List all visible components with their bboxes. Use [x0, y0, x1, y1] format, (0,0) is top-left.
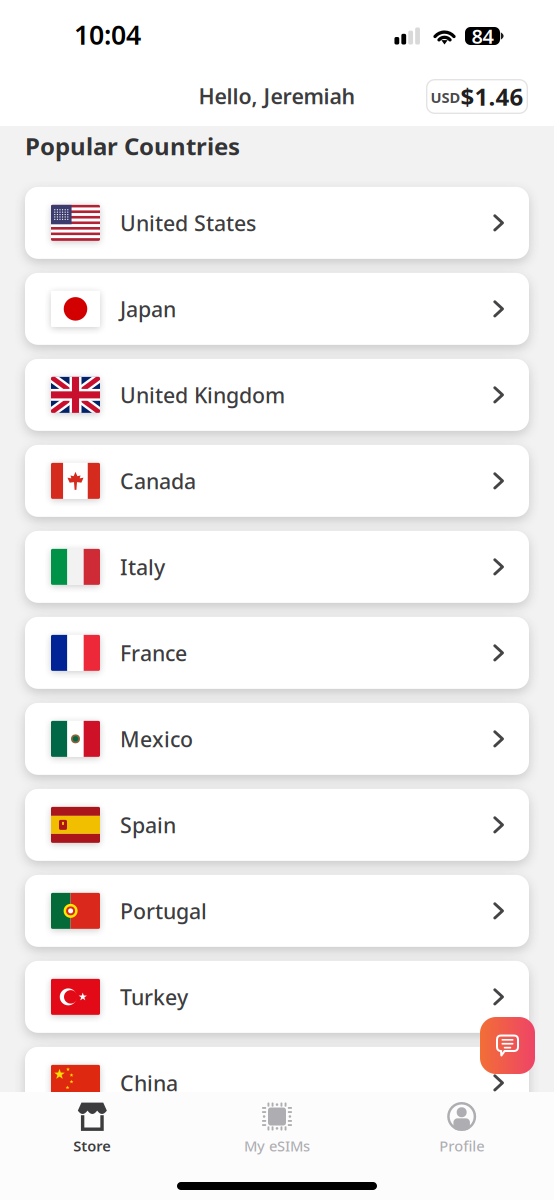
staticText: Hello, Jeremiah [198, 82, 355, 110]
staticText: France [120, 639, 187, 667]
button[interactable]: Store [0, 1092, 185, 1155]
staticText: Canada [120, 467, 196, 495]
staticText: Profile [439, 1136, 484, 1155]
staticText: $1.46 [460, 81, 523, 112]
button[interactable]: Spain [25, 789, 529, 861]
button[interactable]: United States [25, 187, 529, 259]
button[interactable]: My eSIMs [185, 1092, 369, 1155]
staticText: Popular Countries [25, 130, 240, 162]
button[interactable]: Portugal [25, 875, 529, 947]
staticText: Japan [120, 295, 176, 323]
staticText: Spain [120, 811, 176, 839]
staticText: USD [430, 87, 460, 107]
staticText: United Kingdom [120, 381, 285, 409]
button[interactable]: Italy [25, 531, 529, 603]
button[interactable]: China [25, 1047, 529, 1119]
staticText: My eSIMs [244, 1136, 310, 1155]
button[interactable]: USD [426, 68, 528, 114]
staticText: 10:04 [74, 17, 141, 52]
button[interactable]: Profile [369, 1092, 554, 1155]
staticText: China [120, 1069, 178, 1097]
staticText: Italy [120, 553, 165, 581]
staticText: Portugal [120, 897, 207, 925]
staticText: Mexico [120, 725, 193, 753]
staticText: Turkey [120, 983, 188, 1011]
button[interactable]: Canada [25, 445, 529, 517]
button[interactable]: United Kingdom [25, 359, 529, 431]
staticText: United States [120, 209, 256, 237]
button[interactable]: Chat with support [480, 1017, 535, 1074]
button[interactable]: Turkey [25, 961, 529, 1033]
staticText: 84 [471, 23, 493, 49]
staticText: Store [73, 1136, 111, 1155]
button[interactable]: Mexico [25, 703, 529, 775]
button[interactable]: Japan [25, 273, 529, 345]
button[interactable]: France [25, 617, 529, 689]
